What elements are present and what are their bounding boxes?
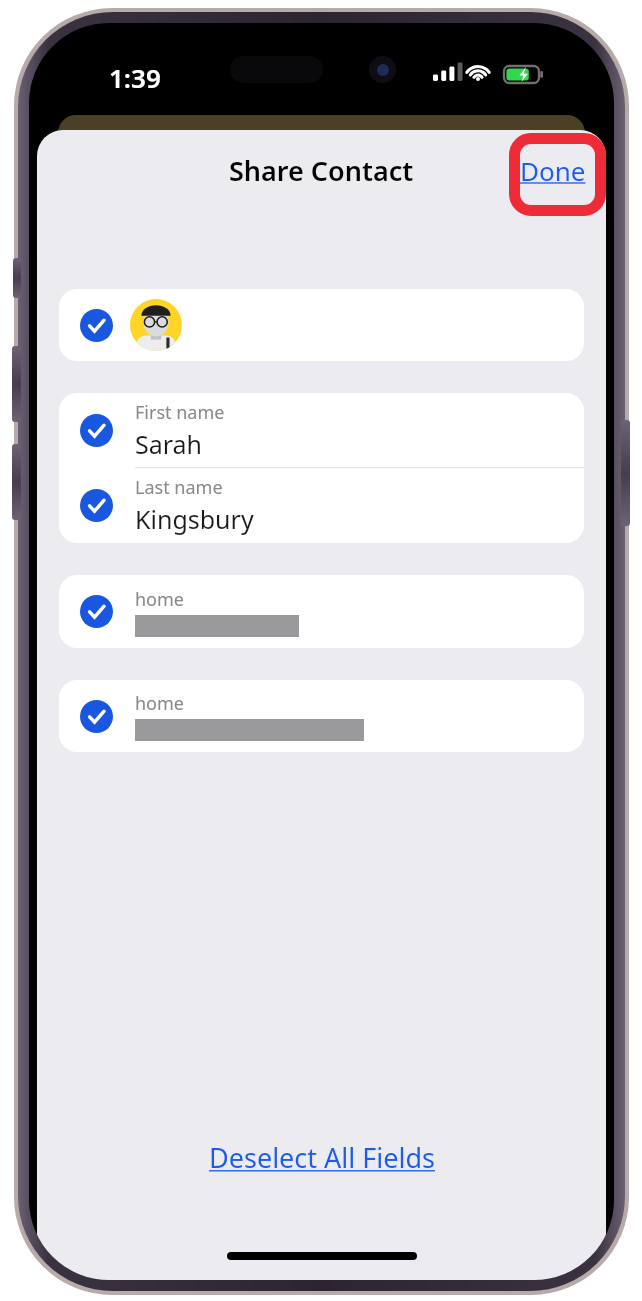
staticText: Sarah xyxy=(135,427,203,461)
staticText: Done xyxy=(520,153,586,188)
staticText: Kingsbury xyxy=(135,502,254,536)
staticText: Share Contact xyxy=(229,152,414,189)
button[interactable] xyxy=(59,289,584,361)
button[interactable]: Done xyxy=(500,143,606,198)
staticText: home xyxy=(135,691,184,716)
button[interactable]: Last name xyxy=(59,468,584,543)
staticText: home xyxy=(135,587,184,612)
staticText: 1:39 xyxy=(109,60,161,95)
staticText: Deselect All Fields xyxy=(209,1139,435,1176)
button[interactable]: Deselect All Fields xyxy=(37,1127,606,1188)
staticText: Last name xyxy=(135,475,223,500)
button[interactable]: home xyxy=(59,680,584,752)
button[interactable]: home xyxy=(59,575,584,648)
button[interactable]: First name xyxy=(59,393,584,467)
staticText: First name xyxy=(135,400,225,425)
